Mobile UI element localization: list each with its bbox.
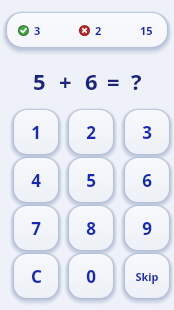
staticText: 7	[31, 217, 41, 240]
button[interactable]: 0	[69, 254, 113, 298]
button[interactable]: 9	[125, 206, 169, 250]
button[interactable]: 4	[14, 158, 58, 202]
staticText: 4	[31, 169, 41, 192]
button[interactable]: Skip	[125, 254, 169, 298]
staticText: =	[107, 66, 120, 96]
button[interactable]: 8	[69, 206, 113, 250]
button[interactable]: 7	[14, 206, 58, 250]
button[interactable]: 3	[125, 110, 169, 154]
staticText: 6	[142, 169, 152, 192]
button[interactable]: 2	[69, 110, 113, 154]
button[interactable]: C	[14, 254, 58, 298]
button[interactable]: 6	[125, 158, 169, 202]
staticText: +	[59, 66, 72, 96]
staticText: C	[31, 265, 42, 288]
staticText: 6	[85, 66, 98, 96]
staticText: 2	[95, 23, 102, 38]
staticText: 5	[86, 169, 96, 192]
staticText: 2	[86, 121, 96, 144]
staticText: 1	[31, 121, 41, 144]
staticText: Skip	[135, 269, 159, 284]
button[interactable]: 5	[69, 158, 113, 202]
staticText: 3	[142, 121, 152, 144]
staticText: 8	[86, 217, 96, 240]
staticText: 0	[86, 265, 96, 288]
staticText: 3	[34, 23, 41, 38]
button[interactable]: 1	[14, 110, 58, 154]
staticText: 15	[140, 23, 153, 38]
staticText: 9	[142, 217, 152, 240]
staticText: ?	[131, 66, 142, 96]
button[interactable]: 3	[7, 13, 167, 47]
staticText: 5	[33, 66, 46, 96]
